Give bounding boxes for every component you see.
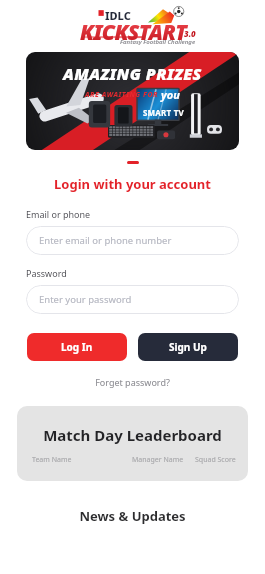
staticText: Match Day Leaderboard [17, 425, 248, 445]
button[interactable]: Log In [27, 333, 127, 361]
staticText: Password [26, 267, 265, 279]
staticText: Email or phone [26, 208, 265, 220]
button[interactable]: Amazing prizes banner [26, 52, 239, 150]
staticText: Manager Name [132, 455, 184, 465]
staticText: Login with your account [0, 175, 265, 193]
button[interactable]: Match Day Leaderboard [17, 406, 248, 481]
button[interactable]: Forget password? [0, 376, 265, 388]
staticText: Log In [61, 340, 93, 354]
staticText: Sign Up [169, 340, 207, 354]
button[interactable]: Sign Up [138, 333, 238, 361]
staticText: News & Updates [0, 507, 265, 525]
staticText: AMAZING PRIZES [63, 63, 202, 85]
staticText: Team Name [32, 455, 72, 465]
staticText: you [161, 87, 180, 102]
staticText: SMART TV [143, 107, 184, 118]
staticText: Squad Score [195, 455, 236, 465]
staticText: 3.0 [184, 28, 196, 39]
staticText: Fantasy Football Challenge [120, 38, 196, 46]
button[interactable]: Enter your password [26, 285, 239, 314]
staticText: Enter email or phone number [39, 234, 172, 247]
staticText: IDLC [105, 8, 131, 23]
button[interactable]: Enter email or phone number [26, 226, 239, 255]
staticText: Enter your password [39, 293, 132, 306]
staticText: ARE AWAITING FOR [85, 90, 161, 100]
staticText: KICKSTART [80, 18, 187, 47]
